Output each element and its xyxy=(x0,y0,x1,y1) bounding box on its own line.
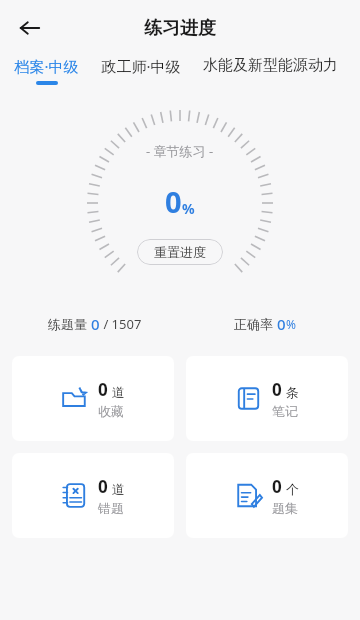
staticText: 0 xyxy=(98,475,108,498)
staticText: 练习进度 xyxy=(144,17,216,40)
button[interactable]: 重置进度 xyxy=(137,239,223,265)
staticText: 正确率 xyxy=(234,315,277,333)
staticText: 档案·中级 xyxy=(14,56,79,76)
button[interactable]: Favorites xyxy=(12,356,174,441)
staticText: - 章节练习 - xyxy=(146,142,214,160)
staticText: 水能及新型能源动力 xyxy=(203,56,338,75)
staticText: / 1507 xyxy=(100,315,142,333)
staticText: 0 xyxy=(272,475,282,498)
button[interactable]: Back xyxy=(8,6,52,50)
staticText: % xyxy=(286,316,296,332)
staticText: 0 xyxy=(98,378,108,401)
staticText: 练题量 xyxy=(48,315,91,333)
staticText: 收藏 xyxy=(98,403,124,419)
staticText: 重置进度 xyxy=(154,244,206,260)
button[interactable]: Wrong questions xyxy=(12,453,174,538)
staticText: 政工师·中级 xyxy=(101,56,181,76)
staticText: 道 xyxy=(112,481,125,497)
staticText: 条 xyxy=(286,384,299,400)
staticText: 题集 xyxy=(272,500,298,516)
staticText: 0 xyxy=(277,314,286,334)
staticText: 道 xyxy=(112,384,125,400)
button[interactable]: 水能及新型能源动力 xyxy=(203,56,338,80)
staticText: 笔记 xyxy=(272,403,298,419)
staticText: 0 xyxy=(91,314,100,334)
staticText: 0 xyxy=(165,182,182,221)
staticText: % xyxy=(182,199,195,218)
staticText: 个 xyxy=(286,481,299,497)
button[interactable]: 档案·中级 xyxy=(14,56,79,85)
staticText: 0 xyxy=(272,378,282,401)
button[interactable]: Question sets xyxy=(186,453,348,538)
staticText: 错题 xyxy=(98,500,124,516)
button[interactable]: Notes xyxy=(186,356,348,441)
button[interactable]: 政工师·中级 xyxy=(101,56,181,81)
